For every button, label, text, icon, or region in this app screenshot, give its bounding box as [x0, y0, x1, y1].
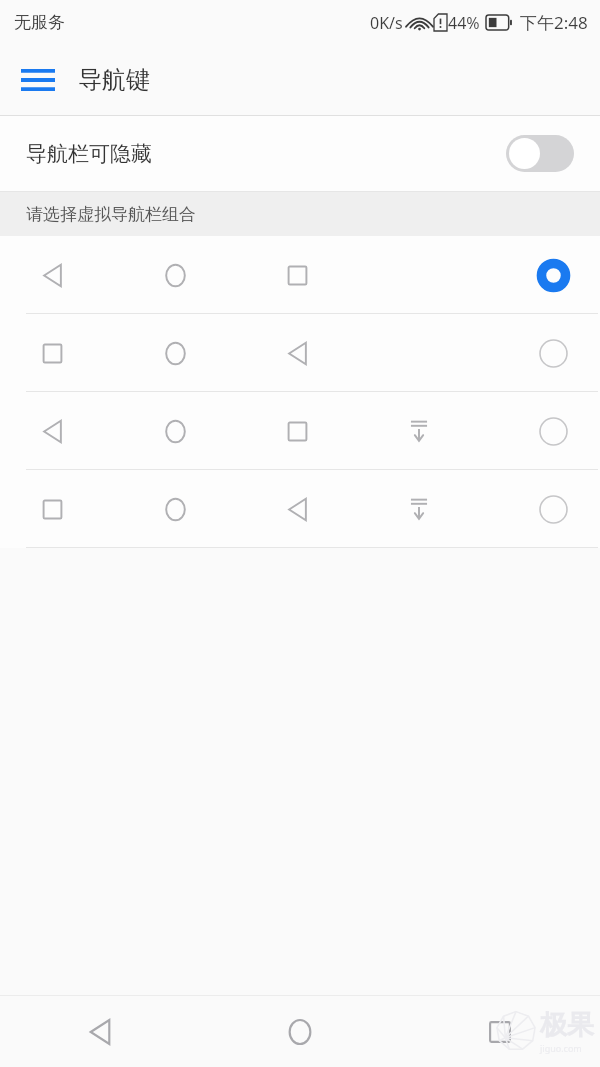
button[interactable]: 导航栏组合选项 — [0, 470, 600, 548]
button[interactable]: 导航栏组合选项 — [0, 314, 600, 392]
button[interactable]: 导航栏可隐藏 — [0, 116, 600, 191]
staticText: 导航栏可隐藏 — [26, 141, 152, 167]
button[interactable]: 菜单 — [12, 54, 64, 106]
staticText: 极果 — [540, 1008, 594, 1042]
staticText: 0K/s — [370, 12, 403, 34]
button[interactable]: 返回 — [0, 996, 200, 1067]
staticText: 无服务 — [14, 12, 65, 33]
staticText: 请选择虚拟导航栏组合 — [26, 204, 196, 225]
button[interactable]: 主屏幕 — [200, 996, 400, 1067]
button[interactable]: 导航栏组合选项 — [0, 392, 600, 470]
staticText: jiguo.com — [540, 1042, 582, 1054]
button[interactable]: 最近任务 — [400, 996, 600, 1067]
staticText: 44% — [448, 12, 480, 34]
button[interactable]: 导航栏组合选项 — [0, 236, 600, 314]
staticText: 下午2:48 — [520, 11, 588, 34]
staticText: 导航键 — [78, 65, 150, 95]
